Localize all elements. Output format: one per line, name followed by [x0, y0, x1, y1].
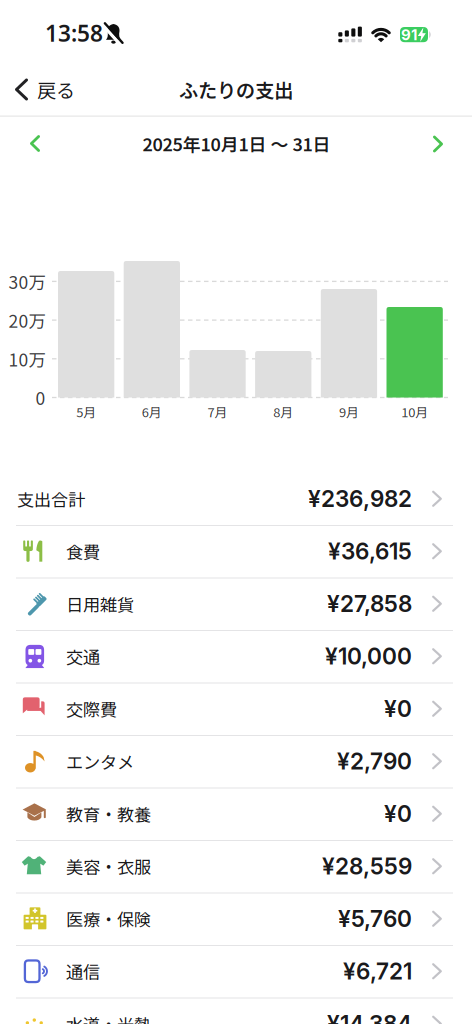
button[interactable]: 交際費: [0, 682, 472, 735]
button[interactable]: 戻る: [7, 67, 83, 111]
staticText: 戻る: [37, 76, 75, 103]
staticText: ¥0: [384, 800, 412, 827]
staticText: 美容・衣服: [66, 854, 151, 879]
staticText: 10月: [401, 402, 428, 421]
button[interactable]: 次の期間: [416, 122, 460, 166]
staticText: ふたりの支出: [179, 76, 293, 103]
staticText: エンタメ: [66, 749, 134, 774]
button[interactable]: 日用雑貨: [0, 577, 472, 630]
button[interactable]: 水道・光熱: [0, 997, 472, 1024]
button[interactable]: 教育・教養: [0, 787, 472, 840]
staticText: 水道・光熱: [66, 1011, 151, 1024]
staticText: 医療・保険: [66, 906, 151, 931]
staticText: 8月: [273, 402, 293, 421]
staticText: ¥28,559: [322, 852, 412, 880]
staticText: 食費: [66, 539, 100, 564]
staticText: 0: [35, 385, 45, 410]
staticText: 30万: [8, 269, 45, 294]
staticText: 10万: [8, 346, 45, 371]
staticText: 13:58: [45, 18, 103, 48]
staticText: ¥2,790: [337, 747, 412, 775]
button[interactable]: 支出合計: [0, 472, 472, 525]
staticText: ¥236,982: [308, 485, 412, 512]
staticText: 通信: [66, 959, 100, 984]
staticText: ¥0: [384, 695, 412, 722]
staticText: 交際費: [66, 696, 117, 721]
button[interactable]: 通信: [0, 945, 472, 997]
staticText: ¥27,858: [327, 590, 412, 617]
button[interactable]: 交通: [0, 630, 472, 682]
button[interactable]: 美容・衣服: [0, 840, 472, 892]
staticText: 教育・教養: [66, 801, 151, 826]
staticText: 91: [401, 26, 417, 44]
button[interactable]: 前の期間: [13, 121, 57, 165]
staticText: 支出合計: [17, 486, 85, 511]
button[interactable]: 医療・保険: [0, 892, 472, 945]
staticText: ¥5,760: [338, 905, 412, 932]
staticText: 9月: [339, 402, 359, 421]
staticText: ¥6,721: [343, 957, 412, 985]
staticText: 日用雑貨: [66, 591, 134, 616]
staticText: ¥10,000: [325, 642, 412, 670]
staticText: 交通: [66, 644, 100, 669]
staticText: 2025年10月1日 ～ 31日: [142, 131, 330, 156]
staticText: 20万: [8, 307, 45, 333]
staticText: 7月: [208, 402, 228, 421]
staticText: ¥14,384: [327, 1010, 412, 1024]
button[interactable]: 食費: [0, 525, 472, 577]
staticText: ¥36,615: [328, 537, 412, 565]
staticText: 5月: [76, 402, 96, 421]
staticText: 6月: [142, 402, 162, 421]
button[interactable]: エンタメ: [0, 735, 472, 787]
